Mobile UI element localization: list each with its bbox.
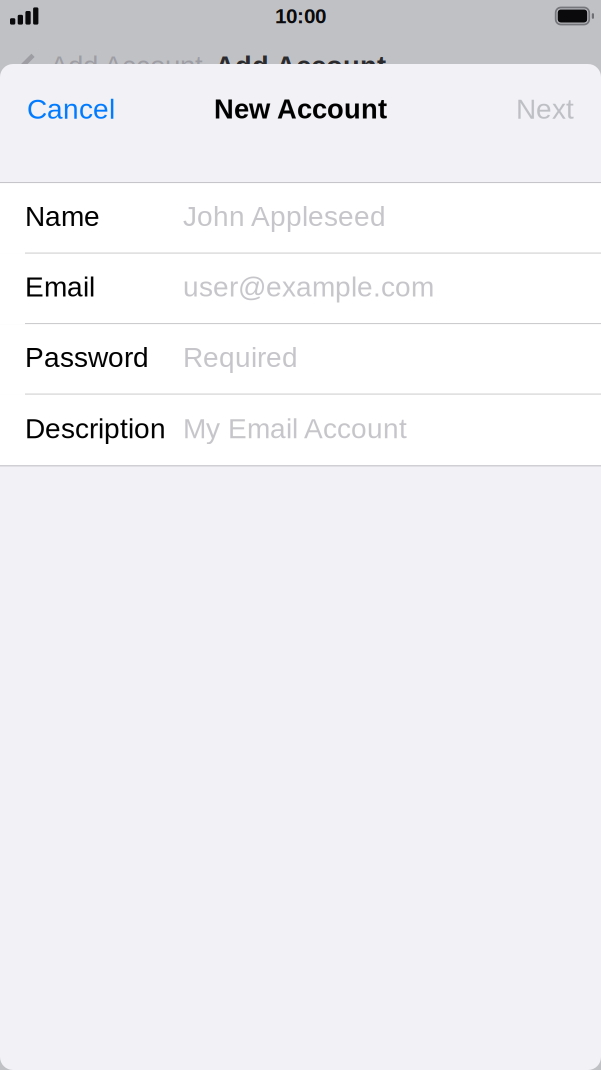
staticText: user@example.com — [183, 271, 434, 302]
button[interactable]: Add Account — [0, 51, 203, 81]
staticText: Email — [25, 271, 95, 302]
staticText: Name — [25, 201, 100, 232]
button[interactable]: Cancel — [0, 81, 142, 137]
button[interactable]: Password — [0, 324, 601, 395]
staticText: Add Account — [215, 51, 386, 81]
button[interactable]: Next — [489, 81, 601, 137]
staticText: My Email Account — [183, 413, 407, 444]
staticText: Required — [183, 342, 298, 373]
staticText: 10:00 — [275, 4, 326, 28]
button[interactable]: Name — [0, 183, 601, 254]
staticText: Description — [25, 413, 166, 444]
staticText: Password — [25, 342, 149, 373]
staticText: New Account — [214, 94, 387, 124]
staticText: Next — [516, 93, 574, 125]
staticText: John Appleseed — [183, 201, 386, 232]
staticText: Cancel — [27, 93, 115, 125]
button[interactable]: Description — [0, 395, 601, 465]
staticText: Add Account — [50, 51, 203, 81]
button[interactable]: Email — [0, 254, 601, 324]
